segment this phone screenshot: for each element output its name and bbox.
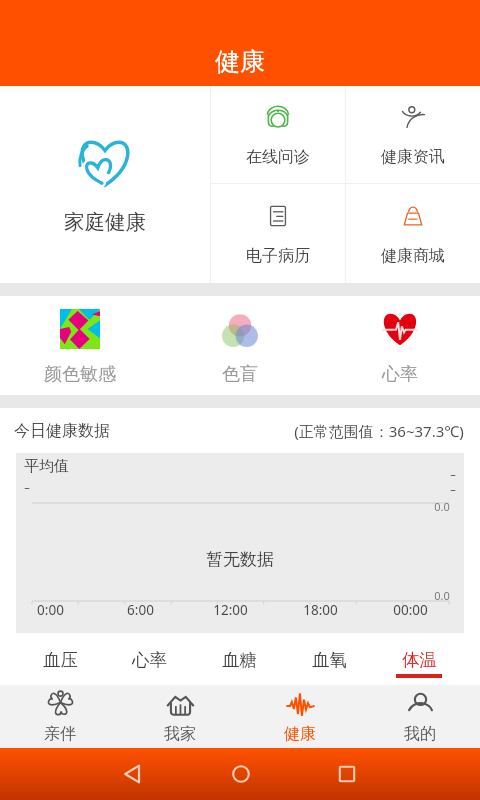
staticText: 暂无数据 [206, 549, 274, 570]
button[interactable]: 电子病历 [211, 184, 345, 283]
staticText: 亲伴 [44, 724, 76, 744]
button[interactable]: 家庭健康 [0, 86, 210, 283]
staticText: 今日健康数据 [14, 421, 110, 441]
button[interactable]: 血糖 [194, 633, 284, 685]
button[interactable]: Back [107, 748, 159, 800]
staticText: 12:00 [213, 601, 248, 619]
staticText: (正常范围值：36~37.3℃) [294, 421, 464, 441]
staticText: 心率 [132, 649, 167, 671]
staticText: 血糖 [222, 649, 257, 671]
staticText: – [450, 466, 456, 481]
staticText: 电子病历 [246, 246, 310, 266]
button[interactable]: 血压 [16, 633, 105, 685]
button[interactable]: Recents [321, 748, 373, 800]
staticText: 血压 [43, 649, 78, 671]
button[interactable]: 健康 [240, 685, 360, 748]
button[interactable]: 在线问诊 [211, 86, 345, 183]
staticText: 00:00 [393, 601, 428, 619]
staticText: 在线问诊 [246, 147, 310, 167]
staticText: 0:00 [37, 601, 64, 619]
staticText: 健康 [215, 46, 265, 77]
button[interactable]: 健康资讯 [346, 86, 480, 183]
staticText: 0.0 [434, 499, 450, 514]
staticText: 我的 [404, 724, 436, 744]
button[interactable]: 健康商城 [346, 184, 480, 283]
button[interactable]: 亲伴 [0, 685, 120, 748]
staticText: 健康资讯 [381, 147, 445, 167]
button[interactable]: 心率 [105, 633, 194, 685]
button[interactable]: 颜色敏感 [0, 296, 160, 395]
staticText: 心率 [382, 363, 418, 386]
button[interactable]: 血氧 [284, 633, 374, 685]
staticText: 颜色敏感 [44, 363, 116, 386]
staticText: 平均值 [24, 457, 69, 476]
staticText: – [450, 481, 456, 496]
staticText: 色盲 [222, 363, 258, 386]
staticText: 健康 [284, 724, 316, 744]
button[interactable]: 体温 [374, 633, 464, 685]
staticText: 0.0 [434, 588, 450, 603]
staticText: 体温 [402, 649, 437, 671]
staticText: – [24, 479, 30, 494]
button[interactable]: 我家 [120, 685, 240, 748]
staticText: 健康商城 [381, 246, 445, 266]
button[interactable]: 我的 [360, 685, 480, 748]
button[interactable]: 心率 [320, 296, 480, 395]
staticText: 家庭健康 [64, 209, 146, 235]
button[interactable]: Home [215, 748, 267, 800]
button[interactable]: 色盲 [160, 296, 320, 395]
staticText: 6:00 [127, 601, 154, 619]
staticText: 18:00 [303, 601, 338, 619]
staticText: 血氧 [312, 649, 347, 671]
staticText: 我家 [164, 724, 196, 744]
